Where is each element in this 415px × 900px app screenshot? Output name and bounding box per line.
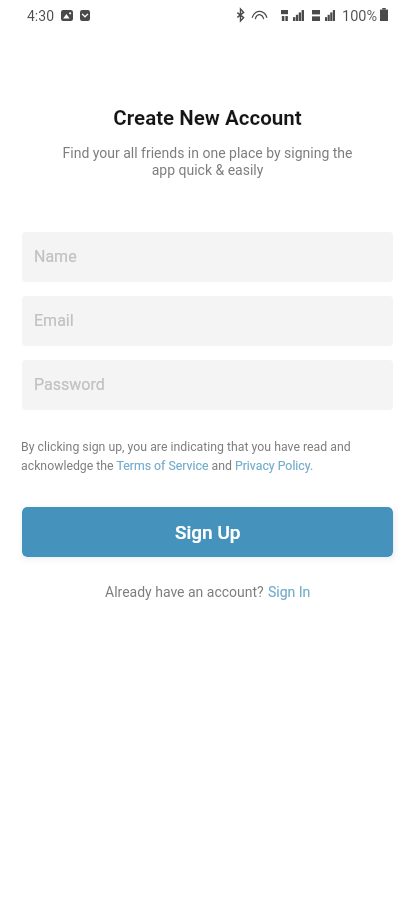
other: Bluetooth <box>236 9 245 21</box>
other: Signal strength SIM 2 <box>325 10 335 21</box>
other: Vibrate <box>281 10 288 21</box>
other: Battery full <box>380 8 388 21</box>
other: Signal strength SIM 1 <box>293 10 304 21</box>
other: Mobile data <box>312 10 320 21</box>
button[interactable]: Name <box>22 232 393 282</box>
staticText: Email <box>34 311 74 330</box>
staticText: Create New Account <box>0 106 415 130</box>
staticText: 100% <box>342 8 378 25</box>
staticText: Find your all friends in one place by si… <box>0 145 415 179</box>
other: Mail notification <box>80 10 90 21</box>
button[interactable]: Sign Up <box>22 507 393 557</box>
staticText: Name <box>34 247 77 266</box>
staticText: Password <box>34 375 105 394</box>
staticText: By clicking sign up, you are indicating … <box>21 440 397 473</box>
other: Screenshot notification <box>61 10 73 21</box>
staticText: Already have an account? <box>105 584 268 600</box>
button[interactable]: Privacy Policy <box>233 457 313 475</box>
staticText: Sign In <box>268 584 311 600</box>
other: Nearby share <box>252 10 267 21</box>
staticText: Sign Up <box>175 521 241 543</box>
button[interactable]: Terms of Service <box>114 457 210 475</box>
button[interactable]: Sign In <box>268 584 311 600</box>
staticText: 4:30 <box>27 8 54 24</box>
button[interactable]: Email <box>22 296 393 346</box>
button[interactable]: Password <box>22 360 393 410</box>
